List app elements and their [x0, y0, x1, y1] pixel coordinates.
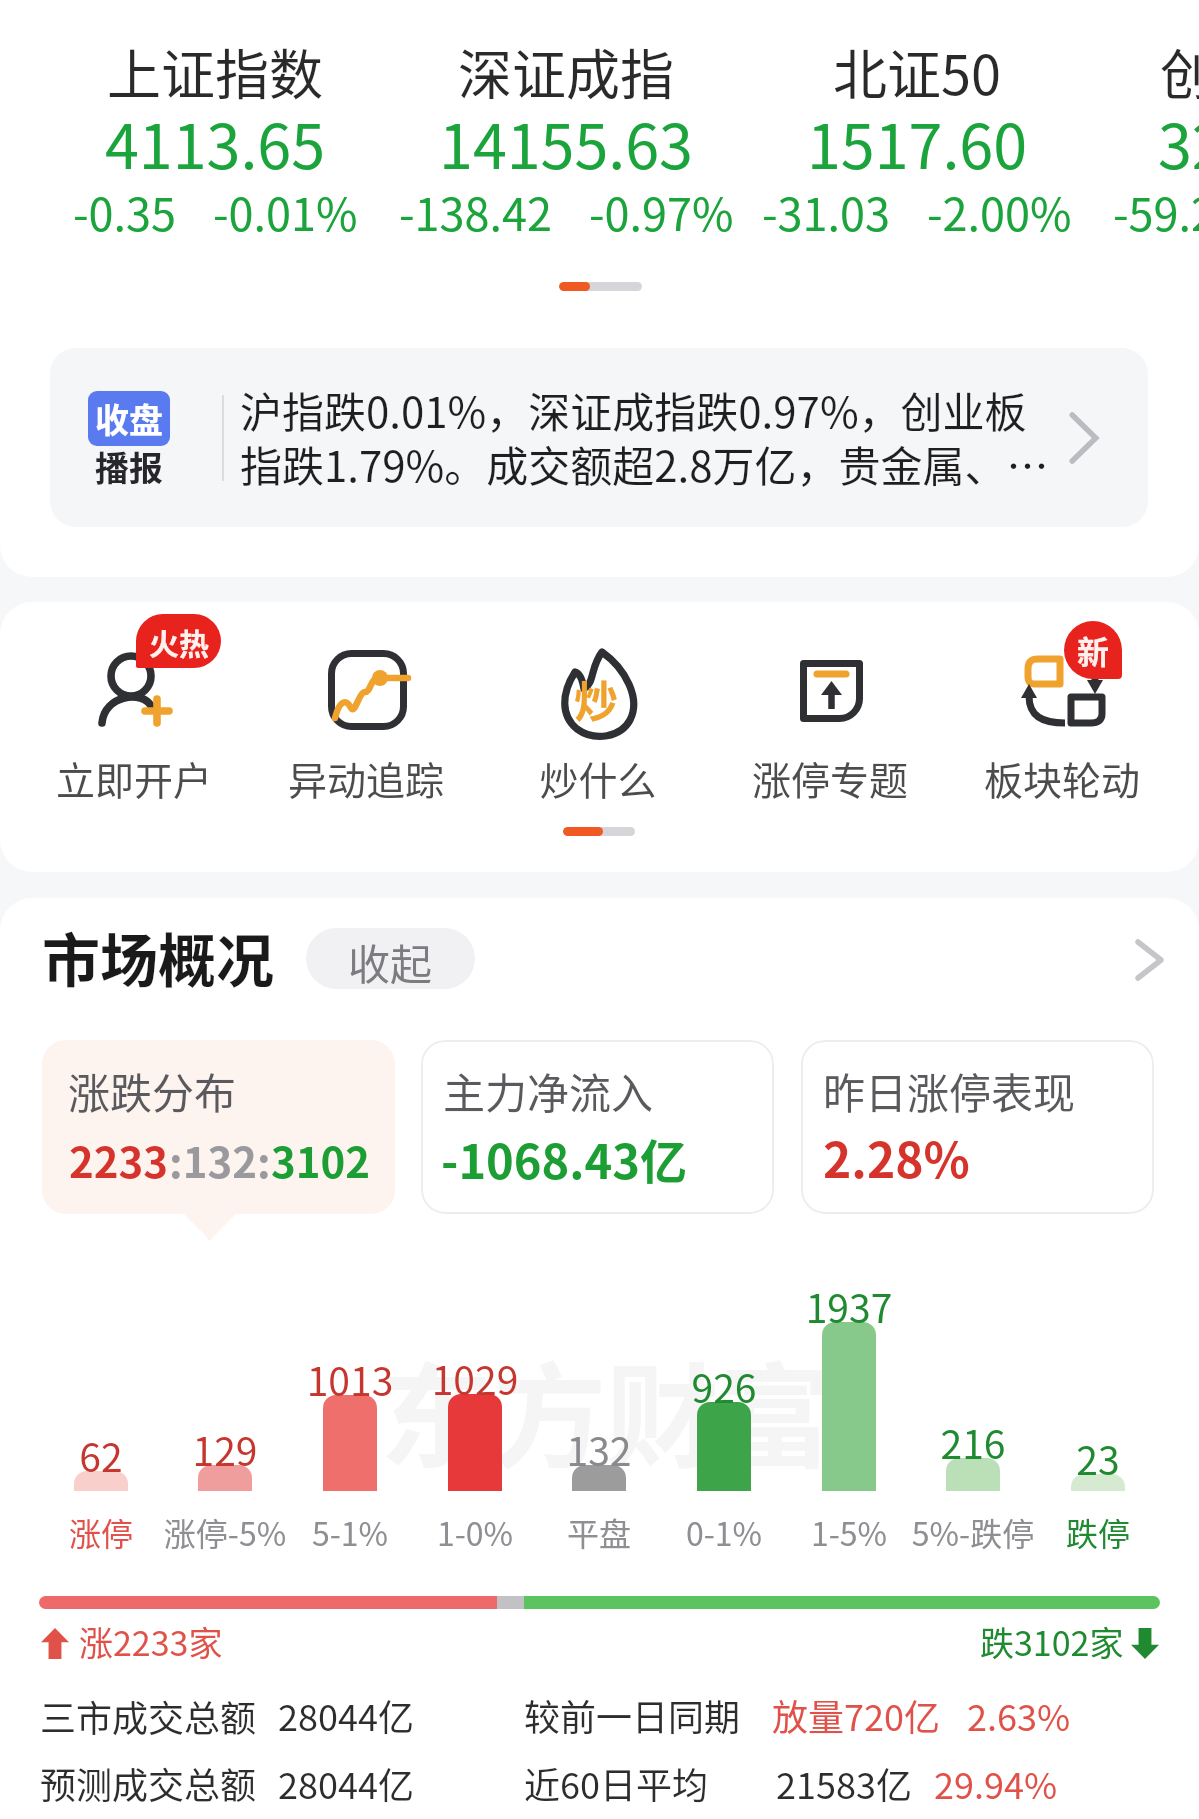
staticText: 收起 — [348, 931, 433, 989]
button[interactable]: Market overview details — [1122, 928, 1174, 992]
staticText: 炒 — [574, 667, 618, 731]
button[interactable]: 板块轮动 — [946, 606, 1178, 806]
staticText: 跌3102家 — [980, 1617, 1124, 1666]
staticText: 市场概况 — [42, 915, 275, 999]
staticText: 3102 — [271, 1129, 371, 1190]
staticText: 0-1% — [324, 1509, 1124, 1555]
button[interactable]: 炒什么 — [482, 606, 714, 806]
staticText: 板块轮动 — [662, 750, 1199, 806]
staticText: 2233 — [69, 1129, 169, 1190]
staticText: -1068.43亿 — [441, 1124, 688, 1192]
staticText: 28044亿 — [278, 1689, 414, 1741]
staticText: 昨日涨停表现 — [823, 1060, 1076, 1121]
staticText: 深证成指 — [166, 32, 966, 110]
button[interactable]: 涨停专题 — [714, 606, 946, 806]
staticText: 1013 — [0, 1351, 750, 1407]
button[interactable]: 涨跌分布 — [42, 1040, 395, 1214]
staticText: -0.35 — [73, 179, 177, 244]
staticText: 5%-跌停 — [573, 1509, 1199, 1555]
staticText: 沪指跌0.01%，深证成指跌0.97%，创业板 — [240, 379, 1027, 440]
staticText: -31.03 — [762, 179, 891, 244]
staticText: 较前一日同期 — [524, 1689, 741, 1741]
staticText: 炒什么 — [198, 750, 998, 806]
staticText: 涨停-5% — [0, 1509, 625, 1555]
staticText: 立即开户 — [0, 750, 534, 806]
button[interactable]: 主力净流入 — [421, 1040, 774, 1214]
staticText: 指跌1.79%。成交额超2.8万亿，贵金属、… — [240, 433, 1049, 494]
staticText: 3258.16 — [868, 98, 1199, 186]
staticText: 1-0% — [75, 1509, 875, 1555]
other: Open closing report — [1070, 413, 1098, 463]
staticText: 火热 — [149, 620, 209, 663]
staticText: 29.94% — [934, 1757, 1058, 1809]
staticText: 62 — [0, 1427, 501, 1483]
staticText: 129 — [0, 1421, 625, 1477]
staticText: 132 — [199, 1421, 999, 1477]
staticText: 2.63% — [967, 1689, 1071, 1741]
staticText: 14155.63 — [166, 98, 966, 186]
staticText: 涨停 — [0, 1509, 501, 1555]
staticText: 预测成交总额 — [40, 1757, 257, 1809]
staticText: 跌停 — [698, 1509, 1199, 1555]
staticText: 播报 — [95, 442, 163, 491]
staticText: 主力净流入 — [443, 1060, 654, 1121]
staticText: 东方财富 — [380, 1327, 832, 1491]
staticText: 1029 — [75, 1350, 875, 1406]
staticText: 1-5% — [449, 1509, 1199, 1555]
button[interactable]: 收起 — [306, 928, 475, 989]
staticText: 北证50 — [517, 32, 1199, 110]
button[interactable]: 异动追踪 — [250, 606, 482, 806]
staticText: 平盘 — [199, 1509, 999, 1555]
staticText: 4113.65 — [0, 98, 615, 186]
staticText: 近60日平均 — [524, 1757, 708, 1809]
staticText: 创业板指 — [868, 32, 1199, 110]
staticText: 上证指数 — [0, 32, 615, 110]
staticText: :132: — [169, 1129, 271, 1190]
staticText: 1517.60 — [517, 98, 1199, 186]
staticText: 放量720亿 — [772, 1689, 940, 1741]
staticText: -2.00% — [927, 179, 1072, 244]
staticText: 23 — [698, 1430, 1199, 1486]
button[interactable]: 立即开户 — [18, 606, 250, 806]
staticText: -59.27 — [1113, 179, 1199, 244]
staticText: 28044亿 — [278, 1757, 414, 1809]
staticText: 涨2233家 — [79, 1617, 223, 1666]
staticText: 21583亿 — [776, 1757, 912, 1809]
staticText: 涨跌分布 — [68, 1060, 237, 1121]
button[interactable]: 昨日涨停表现 — [801, 1040, 1154, 1214]
staticText: 涨停专题 — [430, 750, 1199, 806]
staticText: 5-1% — [0, 1509, 750, 1555]
staticText: 三市成交总额 — [40, 1690, 257, 1742]
staticText: 异动追踪 — [0, 750, 766, 806]
staticText: -0.01% — [213, 179, 358, 244]
staticText: 收盘 — [95, 394, 163, 443]
staticText: 2.28% — [823, 1122, 970, 1192]
staticText: 216 — [573, 1414, 1199, 1470]
staticText: 新 — [1077, 627, 1110, 673]
staticText: -138.42 — [399, 179, 553, 244]
staticText: 1937 — [449, 1278, 1199, 1334]
staticText: -0.97% — [589, 179, 734, 244]
button[interactable]: 收盘 — [50, 348, 1148, 527]
staticText: 926 — [324, 1358, 1124, 1414]
